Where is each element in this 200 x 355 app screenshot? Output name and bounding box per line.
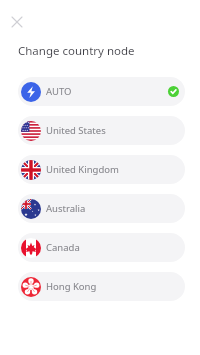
staticText: Change country node	[18, 43, 135, 59]
staticText: United States	[46, 124, 106, 137]
button[interactable]: Australia	[18, 194, 185, 223]
staticText: Canada	[46, 241, 80, 254]
button[interactable]: United States	[18, 116, 185, 145]
staticText: United Kingdom	[46, 163, 119, 176]
button[interactable]: AUTO	[18, 77, 185, 106]
staticText: AUTO	[46, 85, 72, 98]
button[interactable]: Canada	[18, 233, 185, 262]
button[interactable]: United Kingdom	[18, 155, 185, 184]
staticText: Hong Kong	[46, 280, 97, 293]
button[interactable]: Close	[7, 12, 26, 31]
button[interactable]: Hong Kong	[18, 272, 185, 301]
staticText: Australia	[46, 202, 86, 215]
